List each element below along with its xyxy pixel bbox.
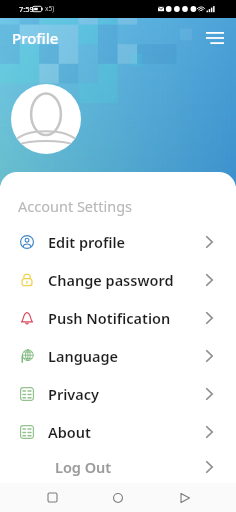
staticText: Edit profile	[48, 232, 126, 252]
button[interactable]: Push Notification	[0, 299, 236, 337]
staticText: About	[48, 422, 91, 442]
staticText: Push Notification	[48, 308, 171, 328]
button[interactable]: Home	[103, 483, 133, 512]
staticText: Account Settings	[18, 196, 133, 216]
button[interactable]: Privacy	[0, 375, 236, 413]
staticText: Change password	[48, 270, 174, 290]
button[interactable]: Recent apps	[37, 483, 67, 512]
staticText: x5)	[45, 4, 55, 13]
button[interactable]: Edit profile	[0, 223, 236, 261]
button[interactable]: Language	[0, 337, 236, 375]
button[interactable]: Log Out	[0, 451, 236, 483]
staticText: 7:59	[19, 4, 34, 14]
staticText: Privacy	[48, 384, 99, 404]
staticText: Language	[48, 346, 119, 366]
button[interactable]: About	[0, 413, 236, 451]
button[interactable]: Back	[170, 483, 200, 512]
button[interactable]: Menu	[200, 23, 230, 53]
button[interactable]: Change password	[0, 261, 236, 299]
staticText: Log Out	[55, 457, 112, 477]
staticText: Profile	[12, 28, 59, 48]
